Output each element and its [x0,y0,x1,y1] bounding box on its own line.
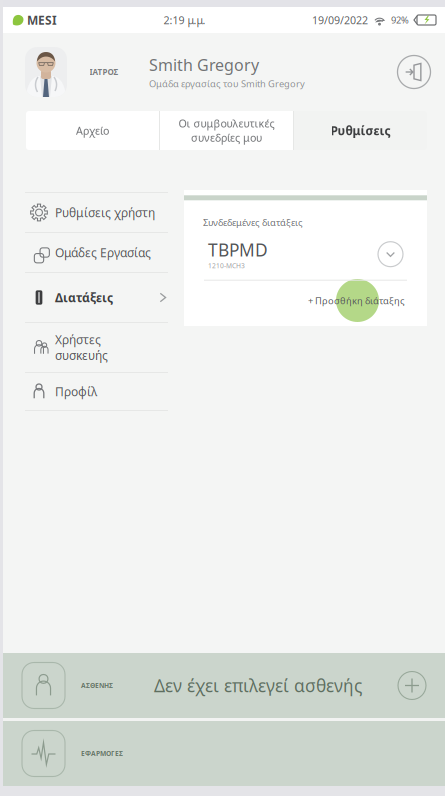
staticText: Συνδεδεμένες διατάξεις [203,216,303,229]
button[interactable]: Ρυθμίσεις [294,111,427,150]
staticText: ΕΦΑΡΜΟΓΕΣ [81,749,123,758]
staticText: συσκευής [55,347,108,363]
button[interactable]: ΕΦΑΡΜΟΓΕΣ [3,721,445,786]
staticText: Ομάδα εργασίας του Smith Gregory [149,77,305,90]
staticText: Οι συμβουλευτικές [178,116,274,130]
staticText: Ρυθμίσεις [330,122,390,138]
button[interactable]: + Προσθήκη διάταξης [184,281,427,321]
staticText: MESI [27,12,57,28]
staticText: 1210-MCH3 [208,261,245,270]
staticText: Χρήστες [55,332,101,347]
staticText: ΙΑΤΡΟΣ [89,67,118,77]
button[interactable]: Χρήστες [25,323,168,372]
button[interactable]: Αποσύνδεση [392,50,436,94]
button[interactable]: Ομάδες Εργασίας [25,233,168,272]
button[interactable]: Διατάξεις [25,273,168,322]
button[interactable]: ΑΣΘΕΝΗΣ [3,653,445,718]
button[interactable]: Προφίλ [25,373,168,410]
staticText: Ρυθμίσεις χρήστη [55,204,155,220]
staticText: ΑΣΘΕΝΗΣ [81,681,113,690]
staticText: 2:19 μ.μ. [163,13,205,27]
staticText: Προφίλ [55,383,97,399]
button[interactable]: Ρυθμίσεις χρήστη [25,193,168,232]
staticText: + Προσθήκη διάταξης [308,294,405,307]
staticText: 19/09/2022 [312,13,368,27]
staticText: Διατάξεις [55,289,113,305]
staticText: συνεδρίες μου [191,130,262,145]
button[interactable]: Οι συμβουλευτικές [160,111,293,150]
staticText: Δεν έχει επιλεγεί ασθενής [154,674,362,697]
button[interactable]: Αρχείο [26,111,159,150]
staticText: TBPMD [208,238,268,261]
staticText: Smith Gregory [149,54,259,75]
button[interactable]: TBPMD [184,229,427,280]
staticText: Ομάδες Εργασίας [55,244,151,260]
staticText: 92% [391,14,409,26]
staticText: Αρχείο [76,123,109,138]
